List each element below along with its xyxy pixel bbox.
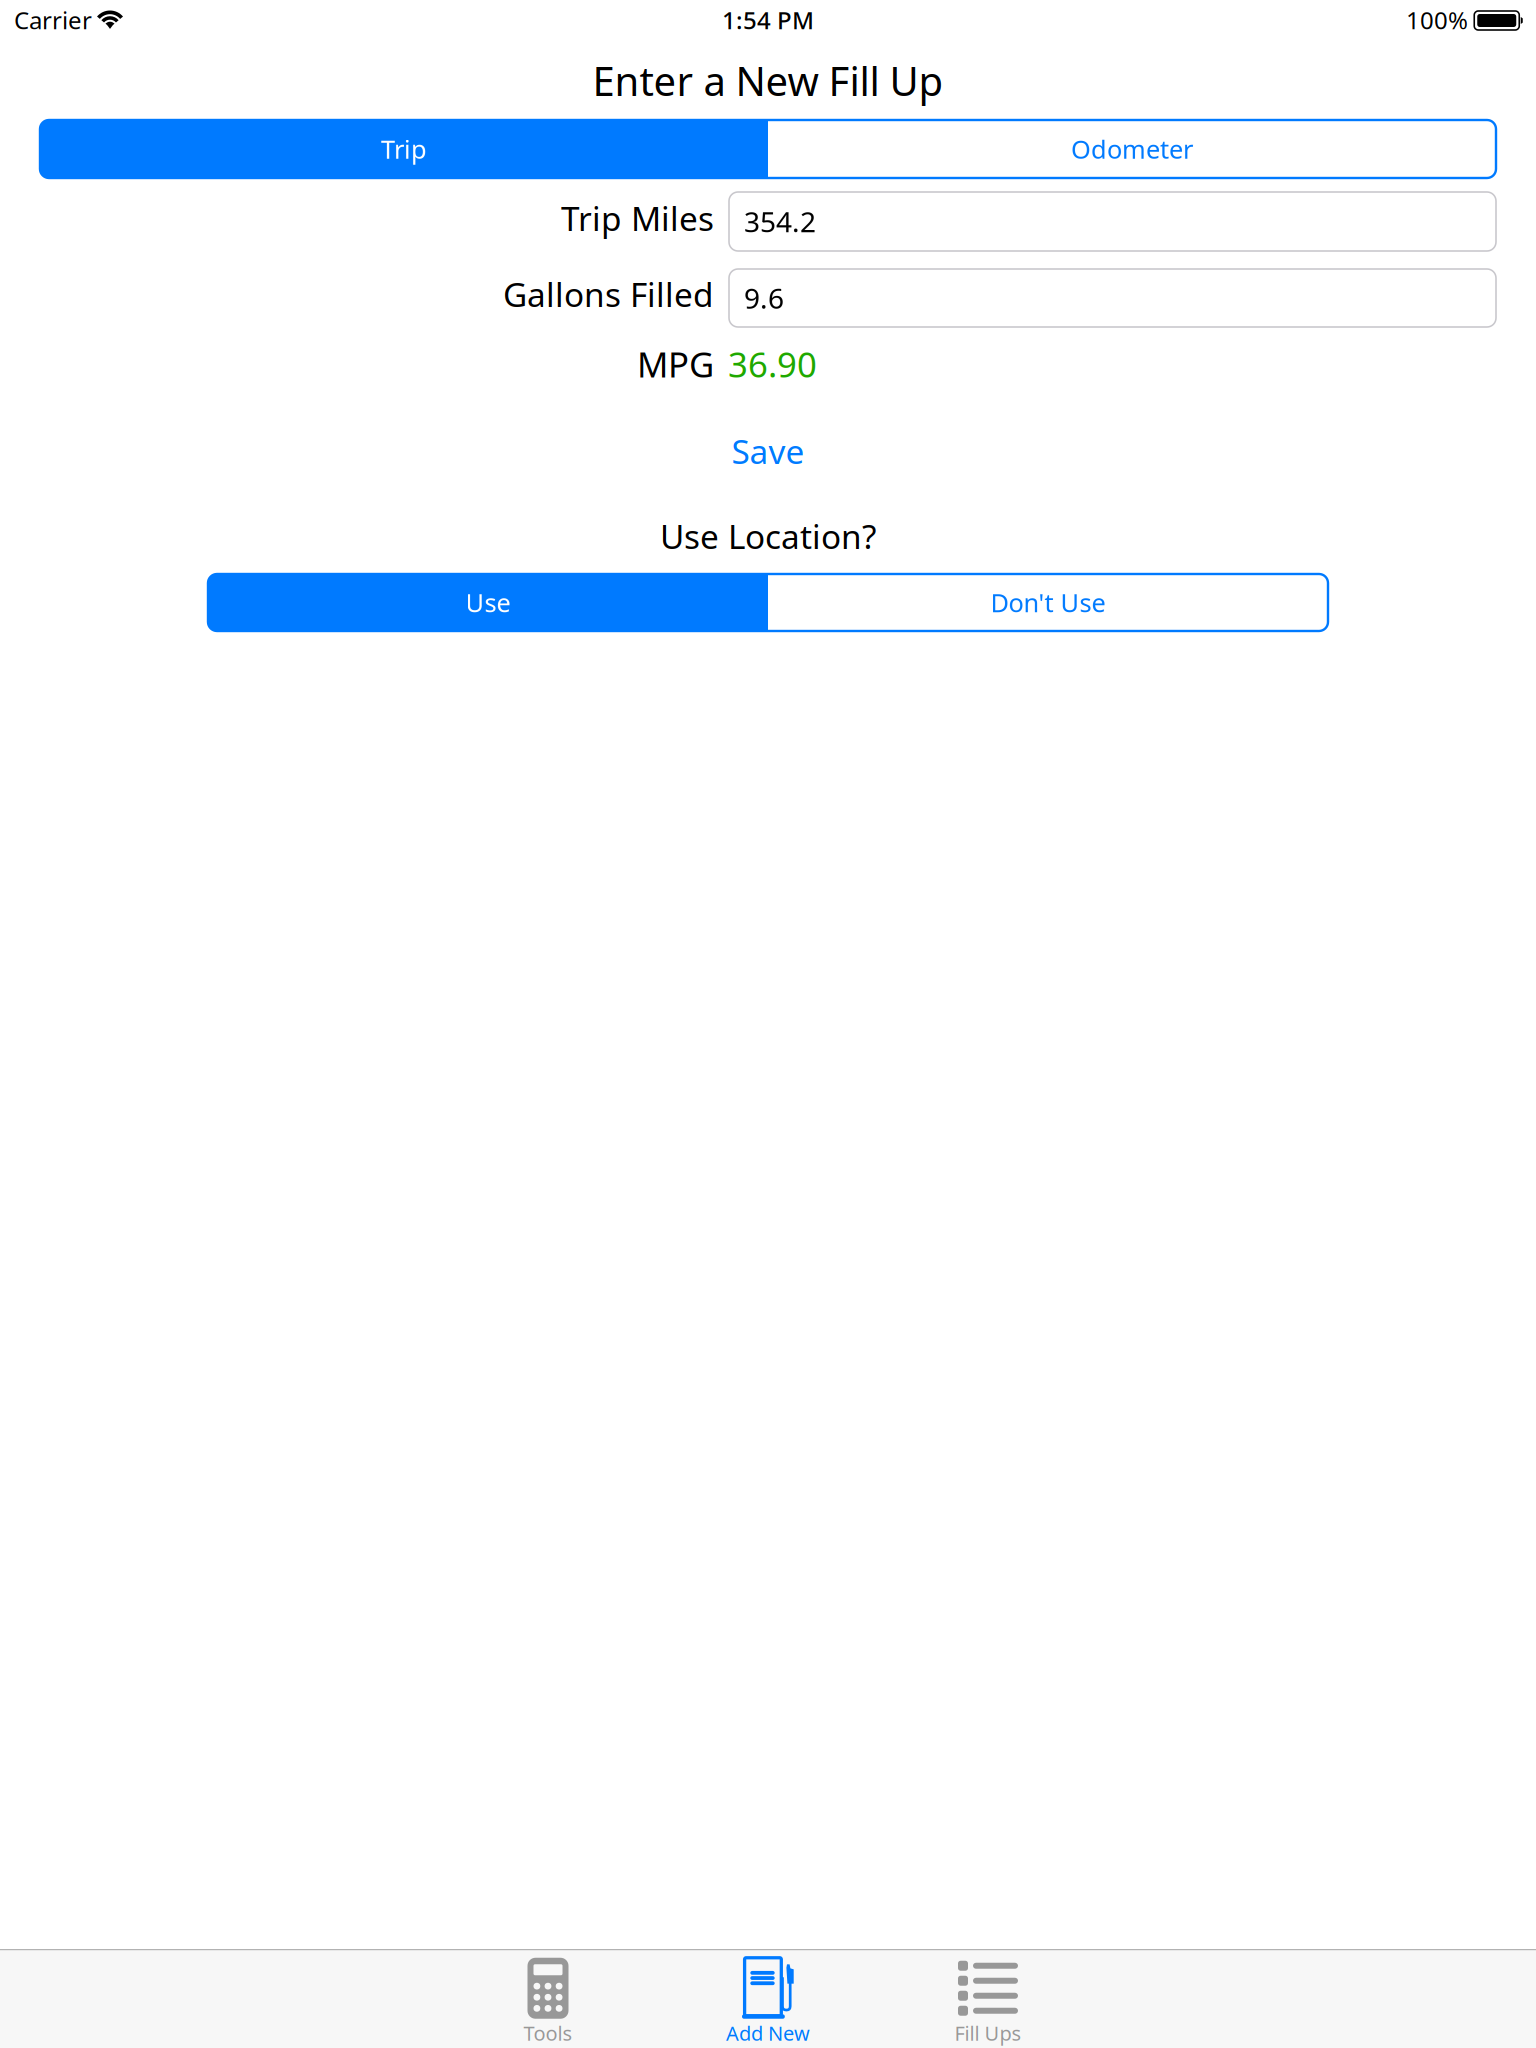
staticText: Save — [731, 429, 804, 473]
button[interactable]: 354.2 — [729, 192, 1496, 251]
staticText: Use Location? — [660, 514, 876, 558]
staticText: Fill Ups — [954, 2020, 1021, 2046]
staticText: 100% — [1406, 4, 1468, 36]
staticText: Trip Miles — [561, 196, 714, 240]
staticText: Carrier — [14, 4, 92, 36]
staticText: Odometer — [1071, 132, 1193, 166]
staticText: 1:54 PM — [722, 4, 814, 36]
staticText: Enter a New Fill Up — [592, 54, 943, 107]
button[interactable]: Odometer — [768, 120, 1496, 178]
staticText: 9.6 — [744, 279, 784, 317]
button[interactable]: Trip — [40, 120, 768, 178]
staticText: Trip — [381, 132, 427, 166]
staticText: Use — [465, 586, 510, 619]
button[interactable]: Save — [688, 428, 848, 474]
button[interactable]: Tools — [438, 1951, 658, 2048]
staticText: Gallons Filled — [503, 272, 714, 316]
button[interactable]: 9.6 — [729, 269, 1496, 327]
staticText: Add New — [726, 2020, 810, 2046]
staticText: Don't Use — [990, 586, 1105, 619]
button[interactable]: Fill Ups — [878, 1951, 1098, 2048]
staticText: 36.90 — [728, 341, 817, 387]
button[interactable]: Add New — [658, 1951, 878, 2048]
button[interactable]: Don't Use — [768, 574, 1328, 631]
staticText: MPG — [637, 341, 714, 387]
staticText: 354.2 — [744, 203, 816, 240]
button[interactable]: Use — [208, 574, 768, 631]
staticText: Tools — [523, 2020, 572, 2046]
